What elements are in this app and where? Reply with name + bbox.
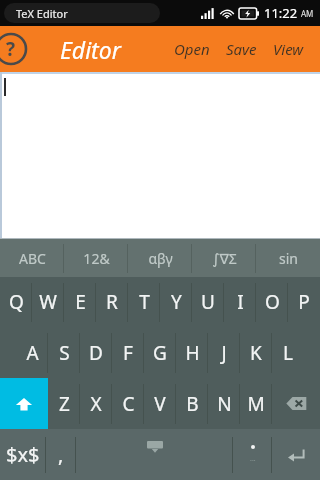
staticText: αβγ: [148, 249, 173, 268]
button[interactable]: ...: [233, 429, 272, 480]
staticText: 12&: [83, 249, 110, 268]
staticText: V: [154, 391, 166, 417]
button[interactable]: K: [240, 327, 272, 378]
button[interactable]: Y: [160, 277, 192, 327]
staticText: Open: [174, 39, 210, 59]
button[interactable]: M: [240, 378, 272, 429]
button[interactable]: ABC: [0, 239, 64, 277]
button[interactable]: F: [112, 327, 144, 378]
button[interactable]: S: [48, 327, 80, 378]
staticText: W: [39, 289, 57, 315]
staticText: E: [75, 289, 86, 315]
button[interactable]: Enter: [272, 429, 320, 480]
staticText: Q: [9, 289, 24, 315]
staticText: F: [123, 340, 133, 366]
staticText: I: [237, 289, 244, 315]
staticText: View: [273, 39, 304, 59]
button[interactable]: I: [224, 277, 256, 327]
button[interactable]: B: [176, 378, 208, 429]
button[interactable]: αβγ: [128, 239, 192, 277]
button[interactable]: Open: [166, 33, 218, 65]
staticText: TeX Editor: [16, 6, 68, 21]
staticText: X: [90, 391, 102, 417]
button[interactable]: X: [80, 378, 112, 429]
staticText: ∫∇Σ: [212, 249, 237, 268]
button[interactable]: O: [256, 277, 288, 327]
staticText: O: [265, 289, 280, 315]
button[interactable]: W: [32, 277, 64, 327]
button[interactable]: ,: [46, 429, 76, 480]
button[interactable]: R: [96, 277, 128, 327]
button[interactable]: Q: [0, 277, 32, 327]
staticText: Y: [171, 289, 182, 315]
button[interactable]: P: [288, 277, 320, 327]
staticText: ABC: [19, 249, 46, 268]
staticText: B: [186, 391, 199, 417]
staticText: AM: [301, 8, 314, 19]
staticText: M: [247, 391, 265, 417]
staticText: H: [185, 340, 200, 366]
button[interactable]: H: [176, 327, 208, 378]
button[interactable]: Save: [218, 33, 265, 65]
button[interactable]: C: [112, 378, 144, 429]
staticText: Editor: [60, 34, 121, 65]
button[interactable]: ∫∇Σ: [192, 239, 256, 277]
staticText: K: [250, 340, 262, 366]
staticText: A: [26, 340, 39, 366]
button[interactable]: D: [80, 327, 112, 378]
staticText: D: [89, 340, 103, 366]
staticText: T: [139, 289, 150, 315]
staticText: S: [59, 340, 70, 366]
button[interactable]: View: [265, 33, 312, 65]
button[interactable]: G: [144, 327, 176, 378]
button[interactable]: U: [192, 277, 224, 327]
button[interactable]: V: [144, 378, 176, 429]
button[interactable]: N: [208, 378, 240, 429]
staticText: ...: [250, 454, 256, 464]
button[interactable]: T: [128, 277, 160, 327]
staticText: R: [106, 289, 118, 315]
button[interactable]: sin: [256, 239, 320, 277]
button[interactable]: Backspace: [272, 378, 320, 429]
staticText: G: [153, 340, 167, 366]
staticText: Save: [226, 39, 257, 59]
staticText: U: [201, 289, 215, 315]
button[interactable]: Z: [48, 378, 80, 429]
button[interactable]: J: [208, 327, 240, 378]
staticText: P: [298, 289, 310, 315]
staticText: J: [221, 340, 227, 366]
staticText: sin: [279, 249, 298, 268]
button[interactable]: L: [272, 327, 304, 378]
staticText: N: [217, 391, 232, 417]
staticText: Z: [59, 391, 70, 417]
staticText: ,: [58, 441, 64, 468]
staticText: $x$: [6, 441, 40, 468]
button[interactable]: E: [64, 277, 96, 327]
button[interactable]: Space: [76, 429, 233, 480]
button[interactable]: A: [16, 327, 48, 378]
button[interactable]: [0, 72, 320, 239]
button[interactable]: 12&: [64, 239, 128, 277]
staticText: C: [122, 391, 135, 417]
button[interactable]: Shift: [0, 378, 48, 429]
staticText: ?: [6, 36, 16, 62]
staticText: L: [283, 340, 293, 366]
button[interactable]: $x$: [0, 429, 46, 480]
button[interactable]: Help: [0, 32, 28, 66]
staticText: 11:22: [264, 4, 298, 22]
